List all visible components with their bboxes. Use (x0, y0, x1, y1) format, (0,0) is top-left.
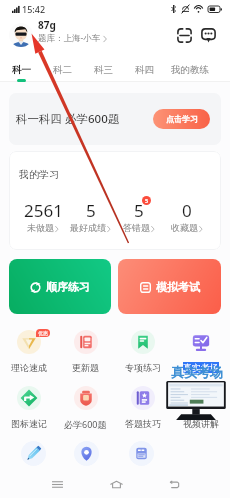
staticText: 点击学习 (166, 114, 198, 124)
button[interactable]: 科一科四 必学600题 (9, 93, 221, 145)
staticText: 真实考场 (171, 364, 223, 380)
button[interactable]: Location (74, 441, 99, 466)
staticText: 题库：上海-小车 (38, 32, 101, 44)
button[interactable]: 0 (163, 199, 211, 233)
staticText: 15:42 (22, 3, 46, 15)
button[interactable]: Study materials (129, 441, 154, 466)
staticText: 顺序练习 (46, 280, 90, 294)
button[interactable]: 我的教练 (167, 52, 213, 82)
button[interactable]: 科二 (39, 52, 85, 82)
staticText: 真实考场 (183, 362, 219, 373)
button[interactable]: 必学600题 (57, 386, 114, 430)
staticText: 答题技巧 (125, 418, 161, 429)
button[interactable]: 专项练习 (114, 330, 172, 373)
button[interactable]: 优惠 (0, 330, 57, 373)
button[interactable]: 顺序练习 (9, 259, 111, 314)
button[interactable]: 答题技巧 (114, 386, 172, 429)
staticText: 科四 (135, 64, 154, 76)
button[interactable]: Profile (9, 23, 33, 47)
staticText: 我的教练 (171, 64, 209, 76)
staticText: 答错题 (123, 222, 150, 233)
button[interactable]: Messages (197, 24, 219, 46)
button[interactable]: 科一 (0, 52, 44, 82)
button[interactable]: 5 (67, 199, 115, 233)
staticText: 科三 (94, 64, 113, 76)
button[interactable]: Home (106, 474, 127, 495)
button[interactable]: Scan (173, 24, 195, 46)
staticText: 5 (86, 199, 96, 222)
staticText: 未做题 (27, 222, 54, 233)
staticText: 科二 (53, 64, 72, 76)
staticText: 5 (145, 197, 149, 204)
staticText: 优惠 (38, 330, 48, 336)
button[interactable]: 更新题 (57, 330, 114, 373)
button[interactable]: Back (164, 474, 185, 495)
button[interactable]: 真实考场 (172, 330, 230, 373)
staticText: 87g (38, 18, 56, 32)
button[interactable]: 图标速记 (0, 386, 57, 429)
button[interactable]: 5 (115, 199, 163, 233)
staticText: 模拟考试 (156, 280, 200, 294)
button[interactable]: 模拟考试 (118, 259, 221, 314)
staticText: 科一 (12, 64, 31, 76)
staticText: 收藏题 (171, 222, 198, 233)
staticText: 专项练习 (125, 362, 161, 373)
button[interactable]: 视频讲解 (172, 386, 230, 429)
button[interactable]: 科四 (121, 52, 167, 82)
staticText: 更新题 (72, 362, 99, 373)
button[interactable]: 2561 (19, 199, 67, 233)
staticText: 视频讲解 (183, 418, 219, 429)
staticText: 最好成绩 (70, 222, 106, 233)
staticText: 5 (134, 199, 144, 222)
button[interactable]: Edit (21, 441, 46, 466)
staticText: 科一科四 必学600题 (16, 111, 120, 127)
staticText: 图标速记 (11, 418, 47, 429)
staticText: 0 (182, 199, 192, 222)
button[interactable]: Recents (47, 474, 68, 495)
button[interactable]: 科三 (80, 52, 126, 82)
staticText: 理论速成 (11, 362, 47, 373)
button[interactable]: 点击学习 (153, 109, 210, 129)
staticText: 2561 (24, 199, 63, 222)
staticText: 必学600题 (64, 418, 107, 430)
staticText: 我的学习 (19, 168, 59, 181)
